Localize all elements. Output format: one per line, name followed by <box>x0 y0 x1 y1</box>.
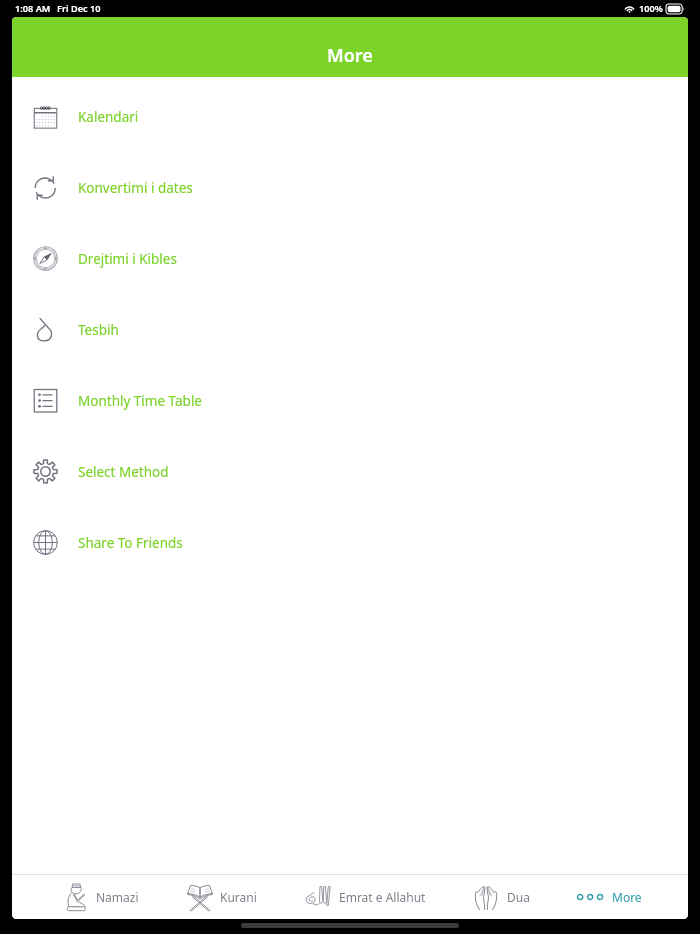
button[interactable]: Emrat e Allahut <box>303 875 426 919</box>
button[interactable]: Select Method <box>12 436 688 507</box>
button[interactable]: Namazi <box>66 875 139 919</box>
staticText: Fri Dec 10 <box>57 2 101 15</box>
button[interactable]: More <box>576 875 642 919</box>
staticText: Select Method <box>78 463 169 481</box>
staticText: Share To Friends <box>78 534 183 552</box>
staticText: 1:08 AM <box>15 2 51 15</box>
button[interactable]: Monthly Time Table <box>12 365 688 436</box>
staticText: Dua <box>507 889 530 905</box>
staticText: Kalendari <box>78 108 139 126</box>
staticText: Namazi <box>96 889 139 905</box>
button[interactable]: Kalendari <box>12 81 688 152</box>
button[interactable]: Share To Friends <box>12 507 688 578</box>
button[interactable]: Tesbih <box>12 294 688 365</box>
staticText: Drejtimi i Kibles <box>78 250 177 268</box>
staticText: More <box>612 889 642 905</box>
staticText: More <box>327 43 373 68</box>
staticText: Tesbih <box>78 321 119 339</box>
button[interactable]: Konvertimi i dates <box>12 152 688 223</box>
staticText: Monthly Time Table <box>78 392 202 410</box>
staticText: Konvertimi i dates <box>78 179 193 197</box>
button[interactable]: Drejtimi i Kibles <box>12 223 688 294</box>
button[interactable]: Kurani <box>185 875 257 919</box>
staticText: Emrat e Allahut <box>339 889 426 905</box>
staticText: 100% <box>639 2 663 15</box>
button[interactable]: Dua <box>472 875 530 919</box>
staticText: Kurani <box>220 889 257 905</box>
